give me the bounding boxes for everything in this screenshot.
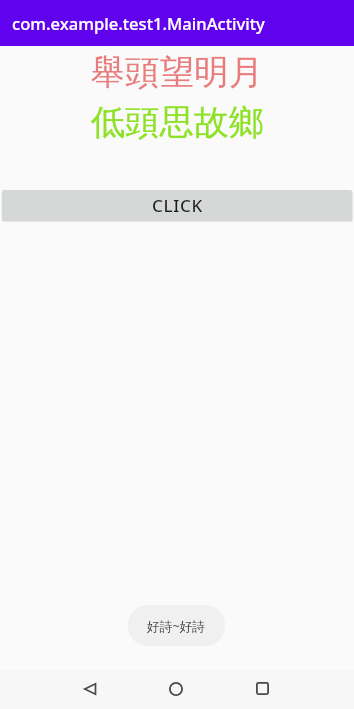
button[interactable]: Recents [240,670,284,707]
staticText: com.example.test1.MainActivity [12,12,265,35]
button[interactable]: Back [68,670,112,707]
staticText: 舉頭望明月 低頭思故鄉 [0,51,354,145]
button[interactable]: CLICK [2,190,352,221]
staticText: 好詩~好詩 [147,617,206,634]
button[interactable]: Home [154,670,198,707]
staticText: CLICK [152,194,203,217]
